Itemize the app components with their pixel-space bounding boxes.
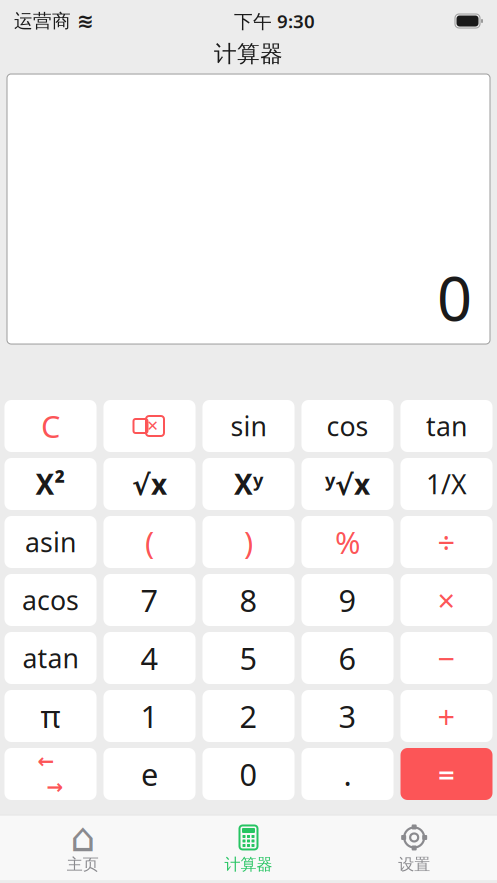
button[interactable]: 6 bbox=[301, 632, 393, 684]
button[interactable]: asin bbox=[4, 516, 96, 568]
button[interactable]: Delete bbox=[103, 400, 195, 452]
staticText: 主页 bbox=[67, 854, 99, 874]
staticText: 7 bbox=[140, 580, 158, 620]
staticText: 1/X bbox=[426, 466, 467, 502]
staticText: 运营商 bbox=[14, 9, 71, 32]
button[interactable]: atan bbox=[4, 632, 96, 684]
staticText: asin bbox=[25, 524, 76, 560]
staticText: → bbox=[46, 775, 63, 798]
staticText: atan bbox=[22, 640, 78, 676]
staticText: 0 bbox=[239, 754, 257, 794]
staticText: ʸ√x bbox=[325, 465, 370, 503]
button[interactable]: 4 bbox=[103, 632, 195, 684]
staticText: 3 bbox=[338, 696, 356, 736]
button[interactable]: 8 bbox=[202, 574, 294, 626]
button[interactable]: sin bbox=[202, 400, 294, 452]
button[interactable]: π bbox=[4, 690, 96, 742]
button[interactable]: ÷ bbox=[400, 516, 492, 568]
button[interactable]: 0 bbox=[202, 748, 294, 800]
staticText: sin bbox=[230, 408, 266, 444]
staticText: ✕ bbox=[146, 418, 158, 434]
staticText: − bbox=[437, 638, 455, 678]
staticText: ) bbox=[244, 522, 253, 562]
staticText: 9 bbox=[338, 580, 356, 620]
button[interactable]: 计算器 bbox=[166, 815, 331, 880]
staticText: 2 bbox=[239, 696, 257, 736]
button[interactable]: C bbox=[4, 400, 96, 452]
button[interactable]: × bbox=[400, 574, 492, 626]
button[interactable]: . bbox=[301, 748, 393, 800]
button[interactable]: √x bbox=[103, 458, 195, 510]
staticText: 8 bbox=[239, 580, 257, 620]
button[interactable]: = bbox=[400, 748, 492, 800]
button[interactable]: Xʸ bbox=[202, 458, 294, 510]
staticText: ( bbox=[145, 522, 154, 562]
staticText: 5 bbox=[239, 638, 257, 678]
button[interactable]: Swap bbox=[4, 748, 96, 800]
staticText: 计算器 bbox=[214, 40, 283, 68]
staticText: × bbox=[437, 580, 455, 620]
button[interactable]: 2 bbox=[202, 690, 294, 742]
button[interactable]: 1/X bbox=[400, 458, 492, 510]
staticText: 0 bbox=[437, 257, 472, 338]
button[interactable]: tan bbox=[400, 400, 492, 452]
button[interactable]: + bbox=[400, 690, 492, 742]
button[interactable]: ⌂ bbox=[0, 815, 166, 880]
button[interactable]: 9 bbox=[301, 574, 393, 626]
button[interactable]: 设置 bbox=[331, 815, 497, 880]
button[interactable]: 1 bbox=[103, 690, 195, 742]
staticText: Xʸ bbox=[234, 465, 263, 503]
staticText: C bbox=[41, 406, 60, 446]
staticText: = bbox=[438, 754, 455, 793]
button[interactable]: 3 bbox=[301, 690, 393, 742]
button[interactable]: acos bbox=[4, 574, 96, 626]
staticText: . bbox=[343, 754, 351, 794]
staticText: ⌂ bbox=[70, 815, 95, 860]
staticText: 4 bbox=[140, 638, 158, 678]
staticText: √x bbox=[132, 465, 167, 503]
staticText: 6 bbox=[338, 638, 356, 678]
staticText: 下午 9:30 bbox=[234, 9, 315, 33]
staticText: ÷ bbox=[437, 522, 455, 562]
button[interactable]: ( bbox=[103, 516, 195, 568]
staticText: % bbox=[335, 522, 360, 562]
button[interactable]: ) bbox=[202, 516, 294, 568]
staticText: ≋ bbox=[77, 10, 94, 32]
staticText: cos bbox=[326, 408, 368, 444]
staticText: 1 bbox=[140, 696, 158, 736]
button[interactable]: X² bbox=[4, 458, 96, 510]
staticText: 计算器 bbox=[224, 854, 272, 874]
button[interactable]: cos bbox=[301, 400, 393, 452]
staticText: ← bbox=[37, 750, 54, 772]
button[interactable]: e bbox=[103, 748, 195, 800]
staticText: acos bbox=[22, 582, 79, 618]
staticText: X² bbox=[35, 465, 65, 503]
staticText: e bbox=[141, 754, 158, 794]
button[interactable]: 5 bbox=[202, 632, 294, 684]
button[interactable]: 7 bbox=[103, 574, 195, 626]
button[interactable]: % bbox=[301, 516, 393, 568]
staticText: π bbox=[40, 696, 60, 736]
staticText: 设置 bbox=[398, 854, 430, 874]
staticText: tan bbox=[426, 408, 467, 444]
button[interactable]: − bbox=[400, 632, 492, 684]
button[interactable]: ʸ√x bbox=[301, 458, 393, 510]
staticText: + bbox=[437, 696, 455, 736]
